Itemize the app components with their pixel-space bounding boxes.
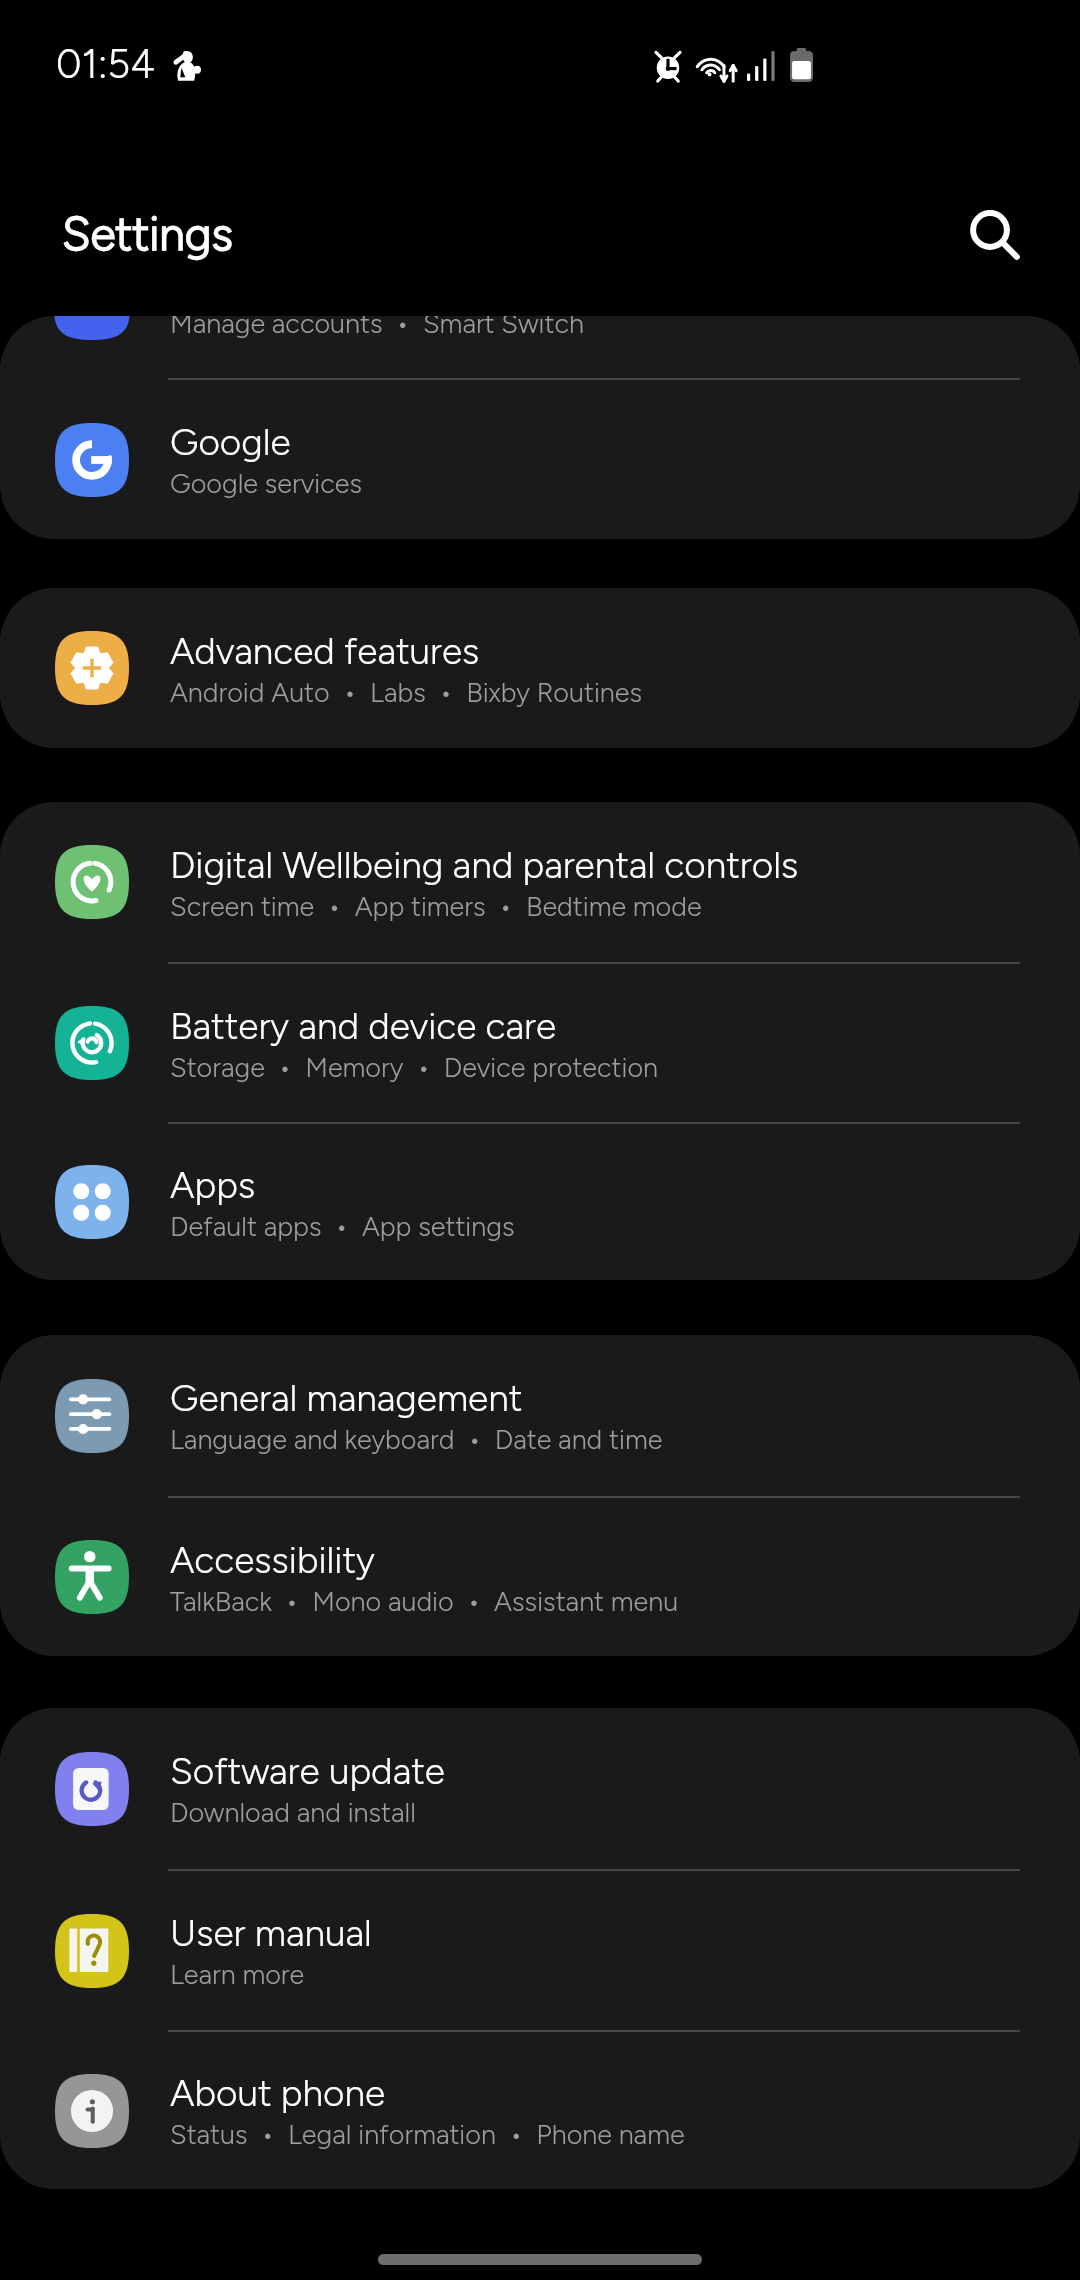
staticText: Language and keyboard • Date and time: [170, 1423, 663, 1455]
staticText: User manual: [170, 1911, 372, 1955]
staticText: Download and install: [170, 1796, 416, 1828]
button[interactable]: Accessibility: [0, 1498, 1080, 1656]
staticText: Manage accounts • Smart Switch: [170, 316, 584, 339]
staticText: Screen time • App timers • Bedtime mode: [170, 890, 702, 922]
staticText: Digital Wellbeing and parental controls: [170, 843, 799, 887]
staticText: TalkBack • Mono audio • Assistant menu: [170, 1585, 679, 1617]
staticText: Google services: [170, 467, 363, 499]
staticText: Battery and device care: [170, 1004, 557, 1048]
staticText: Status • Legal information • Phone name: [170, 2118, 685, 2150]
button[interactable]: General management: [0, 1335, 1080, 1496]
button[interactable]: Advanced features: [0, 588, 1080, 748]
staticText: Learn more: [170, 1958, 305, 1990]
button[interactable]: Battery and device care: [0, 964, 1080, 1122]
staticText: Settings: [62, 206, 234, 261]
staticText: General management: [170, 1376, 523, 1420]
staticText: Advanced features: [170, 629, 480, 673]
button[interactable]: User manual: [0, 1871, 1080, 2030]
button[interactable]: Search: [948, 188, 1044, 284]
staticText: Accessibility: [170, 1538, 375, 1582]
staticText: 01:54: [56, 40, 155, 88]
staticText: Storage • Memory • Device protection: [170, 1051, 658, 1083]
staticText: About phone: [170, 2071, 386, 2115]
button[interactable]: Software update: [0, 1708, 1080, 1869]
staticText: Android Auto • Labs • Bixby Routines: [170, 676, 643, 708]
button[interactable]: Apps: [0, 1124, 1080, 1280]
staticText: Default apps • App settings: [170, 1210, 515, 1242]
button[interactable]: Google: [0, 380, 1080, 539]
button[interactable]: Digital Wellbeing and parental controls: [0, 802, 1080, 962]
staticText: Google: [170, 420, 291, 464]
staticText: Software update: [170, 1749, 445, 1793]
button[interactable]: About phone: [0, 2032, 1080, 2189]
staticText: Apps: [170, 1163, 256, 1207]
